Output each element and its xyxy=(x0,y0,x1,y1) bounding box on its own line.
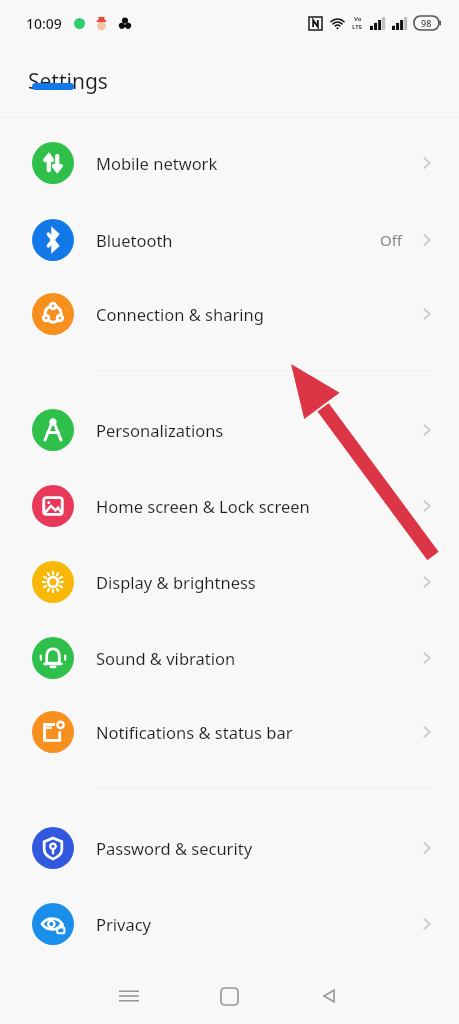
button[interactable]: Mobile network xyxy=(0,125,459,201)
staticText: LTE xyxy=(352,23,363,31)
button[interactable]: Password & security xyxy=(0,809,459,886)
button[interactable]: Display & brightness xyxy=(0,544,459,620)
button[interactable]: Privacy xyxy=(0,886,459,962)
staticText: Bluetooth xyxy=(96,229,380,251)
staticText: Settings xyxy=(28,67,108,96)
staticText: Notifications & status bar xyxy=(96,721,417,743)
staticText: 10:09 xyxy=(26,14,62,33)
button[interactable]: Back xyxy=(279,968,379,1024)
staticText: Off xyxy=(380,230,403,250)
button[interactable]: Connection & sharing xyxy=(0,278,459,350)
button[interactable]: Sound & vibration xyxy=(0,620,459,696)
button[interactable]: Recent apps xyxy=(79,968,179,1024)
button[interactable]: Personalizations xyxy=(0,391,459,468)
staticText: Mobile network xyxy=(96,152,417,174)
staticText: Password & security xyxy=(96,837,417,859)
staticText: Personalizations xyxy=(96,419,417,441)
staticText: 98 xyxy=(421,17,432,29)
staticText: Sound & vibration xyxy=(96,647,417,669)
staticText: Display & brightness xyxy=(96,571,417,593)
staticText: Connection & sharing xyxy=(96,303,417,325)
staticText: Vo xyxy=(354,15,362,23)
button[interactable]: Home screen & Lock screen xyxy=(0,468,459,544)
staticText: Home screen & Lock screen xyxy=(96,495,417,517)
staticText: Privacy xyxy=(96,913,417,935)
button[interactable]: Bluetooth xyxy=(0,201,459,278)
button[interactable]: Notifications & status bar xyxy=(0,696,459,768)
button[interactable]: Home xyxy=(179,968,279,1024)
